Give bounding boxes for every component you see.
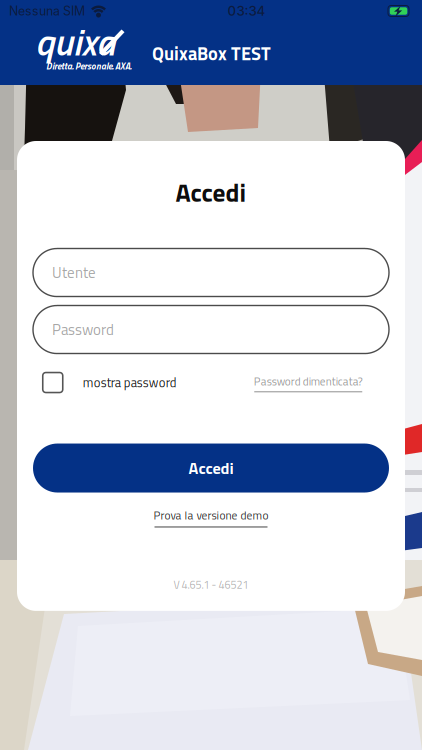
staticText: Password [52,318,114,341]
staticText: V 4.65.1 - 46521 [173,576,248,593]
button[interactable]: Password dimenticata? [254,373,363,392]
staticText: quixa [35,13,115,70]
staticText: Diretta. Personale. AXA. [46,59,131,73]
staticText: Password dimenticata? [254,373,363,390]
button[interactable]: Password [33,305,389,353]
staticText: QuixaBox TEST [152,39,271,67]
staticText: Nessuna SIM [9,3,85,18]
staticText: Accedi [175,173,246,211]
staticText: Utente [52,261,96,284]
staticText: 03:34 [227,3,265,19]
button[interactable]: Accedi [33,443,389,492]
staticText: mostra password [83,373,177,392]
button[interactable]: Prova la versione demo [153,506,268,527]
staticText: Accedi [188,456,233,480]
staticText: Prova la versione demo [153,506,268,524]
button[interactable]: mostra password [43,371,177,393]
button[interactable]: Utente [33,248,389,296]
